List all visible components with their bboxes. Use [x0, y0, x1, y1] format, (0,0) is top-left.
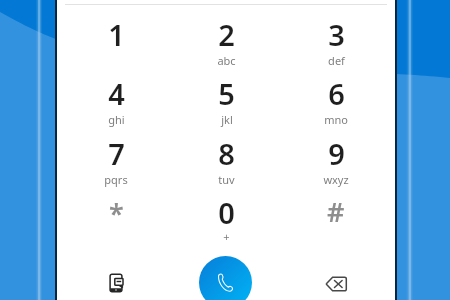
button[interactable]: 6: [281, 71, 391, 130]
staticText: 6: [328, 74, 345, 113]
staticText: 4: [108, 74, 125, 113]
staticText: 8: [218, 134, 235, 173]
staticText: 2: [218, 15, 235, 54]
staticText: abc: [217, 53, 236, 68]
button[interactable]: 9: [281, 131, 391, 190]
staticText: ghi: [108, 112, 125, 127]
button[interactable]: #: [281, 191, 391, 250]
button[interactable]: 0: [171, 191, 281, 250]
staticText: 9: [328, 134, 345, 173]
staticText: 3: [328, 15, 345, 54]
button[interactable]: Send message: [98, 265, 134, 300]
staticText: #: [327, 193, 345, 230]
button[interactable]: Call: [199, 256, 252, 300]
button[interactable]: 3: [281, 12, 391, 71]
staticText: def: [328, 53, 345, 68]
staticText: mno: [324, 112, 348, 127]
staticText: tuv: [218, 172, 235, 187]
staticText: 5: [218, 74, 235, 113]
button[interactable]: 5: [171, 71, 281, 130]
staticText: 7: [108, 134, 125, 173]
staticText: 1: [108, 15, 125, 54]
staticText: *: [109, 195, 124, 232]
button[interactable]: 7: [61, 131, 171, 190]
button[interactable]: *: [61, 191, 171, 250]
button[interactable]: Backspace: [318, 266, 354, 300]
button[interactable]: 2: [171, 12, 281, 71]
staticText: jkl: [221, 112, 233, 127]
button[interactable]: 8: [171, 131, 281, 190]
staticText: pqrs: [104, 172, 128, 187]
staticText: 0: [218, 193, 235, 232]
button[interactable]: 1: [61, 12, 171, 71]
staticText: +: [223, 229, 230, 244]
button[interactable]: 4: [61, 71, 171, 130]
staticText: wxyz: [323, 172, 349, 187]
